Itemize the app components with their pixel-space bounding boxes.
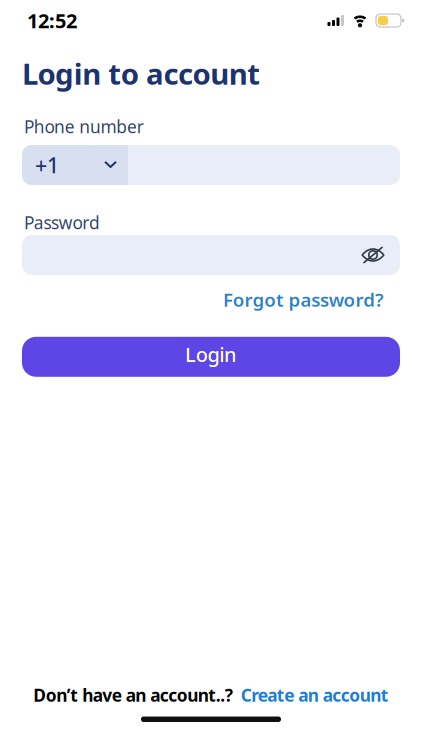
staticText: Login to account [22,54,260,93]
staticText: Don’t have an account..? [33,683,233,706]
staticText: Create an account [241,683,389,706]
button[interactable]: Login [22,337,400,377]
staticText: 12:52 [27,7,77,34]
staticText: Password [24,211,100,234]
button[interactable]: Forgot password? [223,287,384,312]
staticText: Phone number [24,115,144,138]
staticText: +1 [35,151,59,179]
button[interactable]: Create an account [241,683,389,706]
staticText: Login [185,341,237,368]
staticText: Forgot password? [223,287,384,312]
button[interactable]: Country code [22,145,128,185]
button[interactable]: Show password [362,248,400,261]
